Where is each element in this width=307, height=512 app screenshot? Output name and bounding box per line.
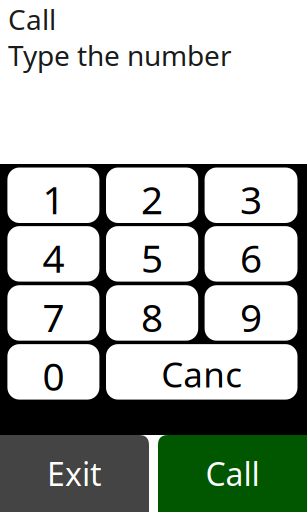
button[interactable]: 0 <box>7 344 99 400</box>
button[interactable]: Canc <box>106 344 297 400</box>
button[interactable]: 8 <box>106 285 198 341</box>
button[interactable]: 4 <box>7 226 99 282</box>
staticText: Call <box>205 452 259 495</box>
staticText: Canc <box>161 350 242 398</box>
staticText: Type the number <box>8 36 232 74</box>
staticText: 4 <box>42 231 64 284</box>
staticText: 8 <box>141 291 163 343</box>
button[interactable]: 5 <box>106 226 198 282</box>
staticText: 5 <box>141 231 163 284</box>
staticText: Exit <box>47 452 102 495</box>
button[interactable]: 7 <box>7 285 99 341</box>
button[interactable]: 2 <box>106 167 198 223</box>
button[interactable]: Exit <box>0 435 149 512</box>
staticText: 6 <box>240 231 262 284</box>
button[interactable]: 3 <box>205 167 297 223</box>
button[interactable]: 6 <box>205 226 297 282</box>
staticText: 9 <box>240 291 262 343</box>
staticText: 3 <box>240 173 262 226</box>
staticText: 2 <box>141 173 163 226</box>
button[interactable]: 9 <box>205 285 297 341</box>
staticText: 0 <box>42 349 64 402</box>
button[interactable]: Call <box>158 435 307 512</box>
staticText: 7 <box>42 291 64 343</box>
button[interactable]: 1 <box>7 167 99 223</box>
staticText: Call <box>8 0 56 38</box>
staticText: 1 <box>42 173 64 226</box>
